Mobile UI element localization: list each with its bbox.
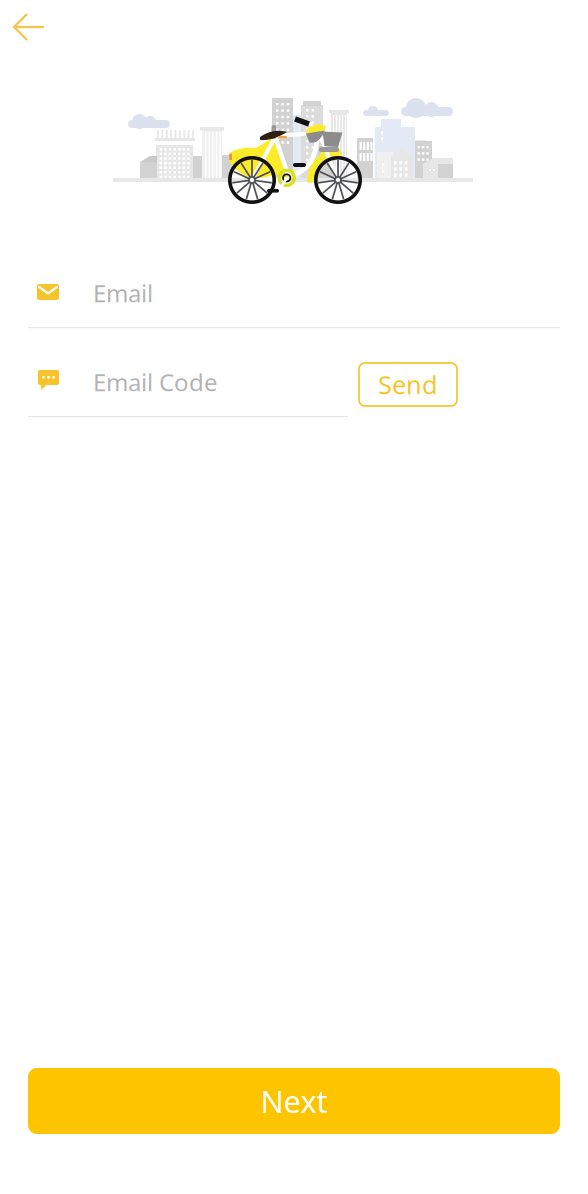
staticText: Email [93,277,153,309]
button[interactable]: Back [0,2,56,46]
staticText: Email Code [93,366,218,398]
staticText: Send [378,368,438,401]
button[interactable]: Send [359,363,457,406]
staticText: Next [260,1081,327,1121]
button[interactable]: Next [28,1068,560,1134]
